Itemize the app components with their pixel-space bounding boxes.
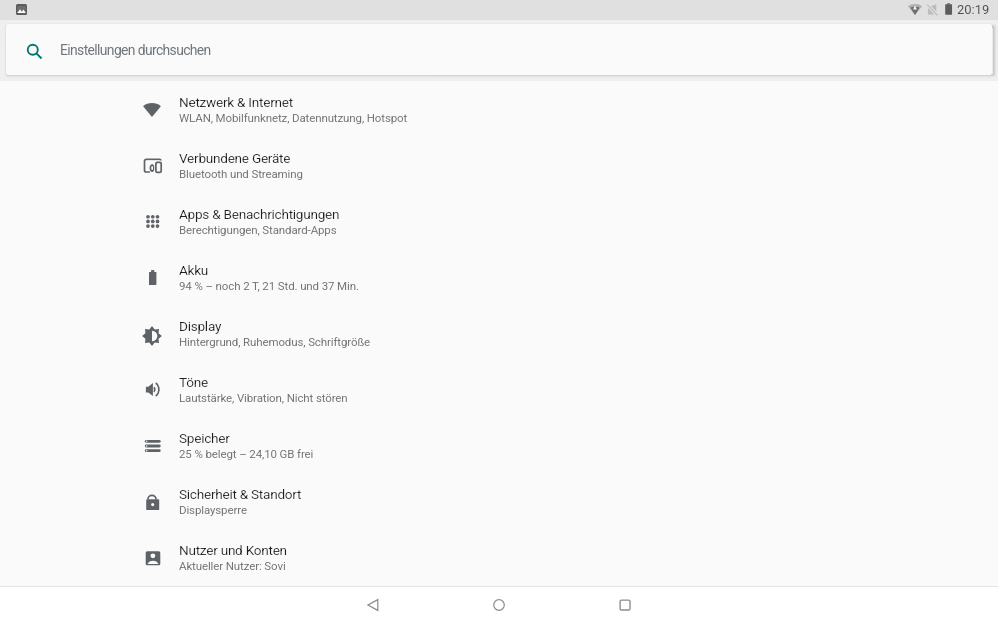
- staticText: Hintergrund, Ruhemodus, Schriftgröße: [179, 335, 371, 348]
- button[interactable]: Nutzer und Konten: [0, 532, 998, 588]
- staticText: Displaysperre: [179, 503, 247, 516]
- staticText: Lautstärke, Vibration, Nicht stören: [179, 391, 348, 404]
- staticText: Sicherheit & Standort: [179, 486, 302, 502]
- button[interactable]: Apps & Benachrichtigungen: [0, 196, 998, 252]
- button[interactable]: Home: [436, 586, 562, 624]
- button[interactable]: Recent apps: [562, 586, 688, 624]
- button[interactable]: Sicherheit & Standort: [0, 476, 998, 532]
- other: Screenshot notification: [16, 4, 27, 15]
- button[interactable]: Speicher: [0, 420, 998, 476]
- staticText: Apps & Benachrichtigungen: [179, 206, 340, 222]
- button[interactable]: Akku: [0, 252, 998, 308]
- staticText: Display: [179, 318, 222, 334]
- staticText: Netzwerk & Internet: [179, 94, 293, 110]
- staticText: WLAN, Mobilfunknetz, Datennutzung, Hotsp…: [179, 111, 408, 124]
- button[interactable]: Netzwerk & Internet: [0, 84, 998, 140]
- button[interactable]: Töne: [0, 364, 998, 420]
- staticText: Verbundene Geräte: [179, 150, 291, 166]
- staticText: Nutzer und Konten: [179, 542, 287, 558]
- staticText: Speicher: [179, 430, 230, 446]
- button[interactable]: Verbundene Geräte: [0, 140, 998, 196]
- staticText: Einstellungen durchsuchen: [60, 42, 211, 58]
- staticText: 94 % – noch 2 T, 21 Std. und 37 Min.: [179, 279, 359, 292]
- button[interactable]: Back: [310, 586, 436, 624]
- staticText: Bluetooth und Streaming: [179, 167, 303, 180]
- button[interactable]: Display: [0, 308, 998, 364]
- staticText: Akku: [179, 262, 209, 278]
- staticText: Töne: [179, 374, 208, 390]
- staticText: Berechtigungen, Standard-Apps: [179, 223, 337, 236]
- button[interactable]: Einstellungen durchsuchen: [6, 24, 992, 75]
- staticText: 20:19: [957, 2, 990, 17]
- staticText: 25 % belegt – 24,10 GB frei: [179, 447, 314, 460]
- staticText: Aktueller Nutzer: Sovi: [179, 559, 286, 572]
